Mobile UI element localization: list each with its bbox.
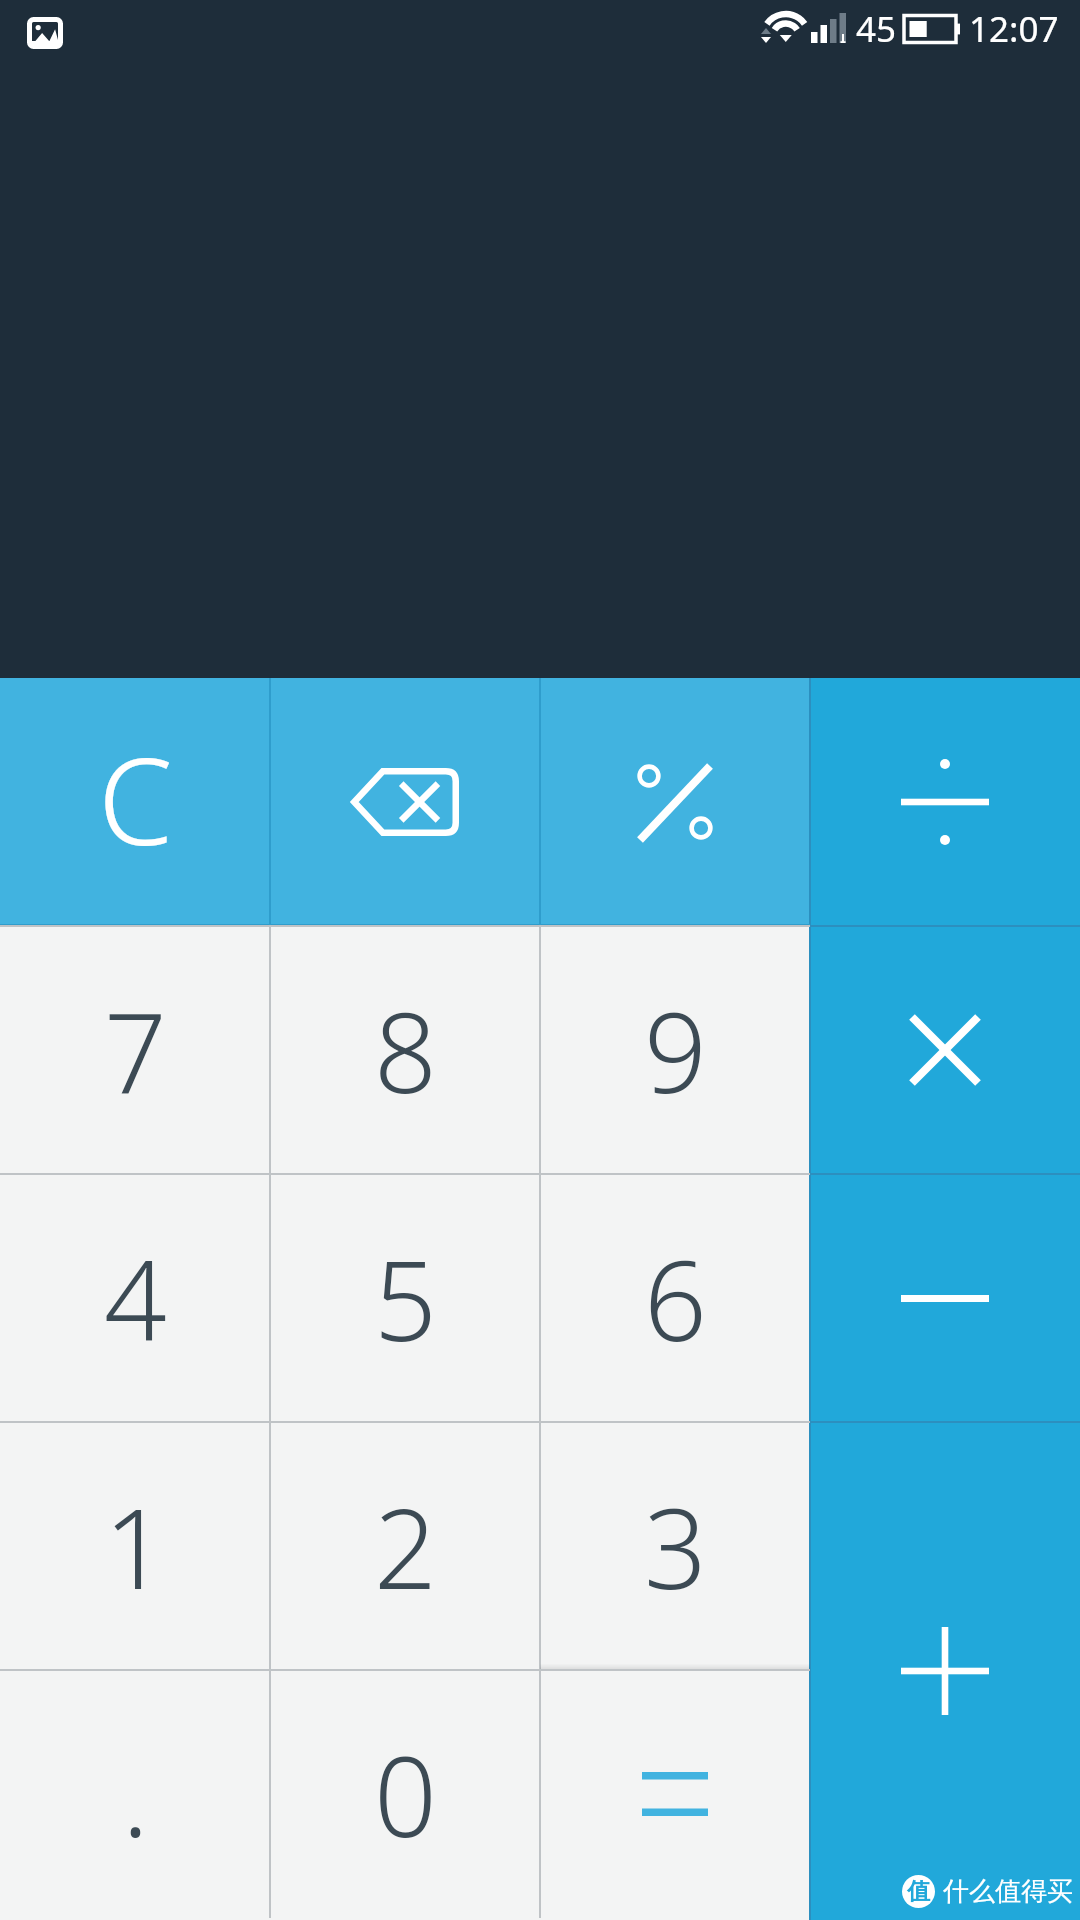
button[interactable]: 7 — [0, 926, 270, 1174]
staticText: 0 — [374, 1719, 437, 1869]
staticText: 8 — [374, 975, 437, 1125]
button[interactable]: 2 — [270, 1422, 540, 1670]
staticText: . — [122, 1719, 149, 1869]
staticText: 3 — [644, 1471, 707, 1621]
staticText: 5 — [374, 1223, 437, 1373]
button[interactable]: 4 — [0, 1174, 270, 1422]
staticText: 4 — [104, 1223, 167, 1373]
staticText: 9 — [644, 975, 707, 1125]
staticText: 7 — [104, 975, 167, 1125]
button[interactable]: 5 — [270, 1174, 540, 1422]
staticText: 12:07 — [969, 5, 1059, 53]
button[interactable]: . — [0, 1670, 270, 1918]
button[interactable]: Percent — [540, 678, 810, 926]
other: Screenshot — [27, 17, 63, 49]
button[interactable]: Backspace — [270, 678, 540, 926]
button[interactable]: Add — [810, 1422, 1080, 1920]
staticText: 什么值得买 — [943, 1875, 1073, 1908]
staticText: 2 — [374, 1471, 437, 1621]
staticText: 6 — [644, 1223, 707, 1373]
button[interactable]: Subtract — [810, 1174, 1080, 1422]
button[interactable]: 0 — [270, 1670, 540, 1918]
staticText: 45 — [856, 5, 897, 53]
button[interactable]: Divide — [810, 678, 1080, 926]
button[interactable]: 3 — [540, 1422, 810, 1670]
button[interactable]: C — [0, 678, 270, 926]
staticText: C — [98, 717, 173, 880]
button[interactable]: Equals — [540, 1670, 810, 1918]
staticText: 值 — [907, 1877, 930, 1906]
button[interactable]: 1 — [0, 1422, 270, 1670]
button[interactable]: 8 — [270, 926, 540, 1174]
button[interactable]: Multiply — [810, 926, 1080, 1174]
button[interactable]: 9 — [540, 926, 810, 1174]
button[interactable]: 6 — [540, 1174, 810, 1422]
staticText: 1 — [104, 1471, 167, 1621]
